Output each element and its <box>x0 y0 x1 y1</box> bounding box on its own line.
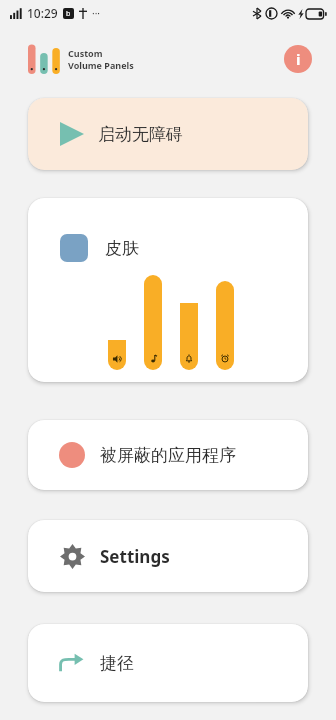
staticText: Volume Panels <box>68 59 134 71</box>
staticText: i <box>296 49 301 69</box>
staticText: Settings <box>100 545 170 568</box>
button[interactable]: 启动无障碍 <box>28 98 308 170</box>
staticText: 皮肤 <box>105 238 139 259</box>
button[interactable]: 捷径 <box>28 624 308 702</box>
button[interactable]: Info <box>284 45 312 73</box>
staticText: Custom <box>68 47 103 59</box>
staticText: 被屏蔽的应用程序 <box>100 445 236 466</box>
staticText: b <box>66 9 71 19</box>
button[interactable]: 被屏蔽的应用程序 <box>28 420 308 490</box>
button[interactable]: Custom <box>28 44 134 74</box>
staticText: 启动无障碍 <box>98 124 183 145</box>
button[interactable]: 皮肤 <box>28 198 308 382</box>
staticText: ··· <box>92 6 101 20</box>
button[interactable]: Settings <box>28 520 308 592</box>
staticText: 捷径 <box>100 653 134 674</box>
staticText: 10:29 <box>27 5 58 21</box>
